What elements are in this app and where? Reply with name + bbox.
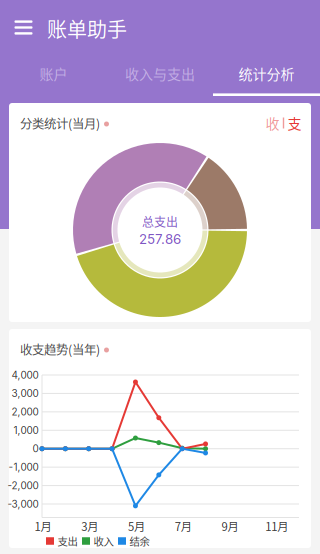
staticText: 账单助手	[47, 14, 127, 43]
staticText: 7月	[175, 518, 192, 534]
staticText: 1,000	[13, 424, 38, 436]
staticText: 11月	[265, 518, 288, 534]
button[interactable]: Menu	[0, 0, 47, 55]
button[interactable]: 收	[266, 113, 279, 133]
staticText: -3,000	[7, 498, 38, 510]
staticText: 统计分析	[239, 63, 295, 84]
staticText: 结余	[129, 533, 149, 549]
staticText: 3月	[81, 518, 98, 534]
staticText: 分类统计(当月)	[20, 114, 100, 132]
staticText: 收入	[93, 533, 113, 549]
staticText: -2,000	[7, 479, 38, 492]
staticText: 3,000	[11, 387, 38, 399]
staticText: 账户	[39, 63, 67, 84]
staticText: 收入与支出	[125, 63, 195, 84]
staticText: 收	[265, 113, 279, 133]
staticText: 2,000	[11, 406, 38, 418]
button[interactable]: 账户	[0, 54, 107, 94]
button[interactable]: 统计分析	[213, 54, 320, 94]
staticText: 支出	[57, 533, 77, 549]
staticText: 总支出	[142, 213, 178, 230]
staticText: 1月	[34, 518, 51, 534]
button[interactable]: 支	[288, 113, 301, 133]
staticText: 支	[287, 113, 301, 133]
staticText: 0	[32, 443, 38, 455]
staticText: 9月	[221, 518, 238, 534]
staticText: -1,000	[8, 461, 38, 473]
staticText: 收支趋势(当年)	[20, 340, 100, 358]
staticText: 257.86	[139, 231, 181, 247]
staticText: 4,000	[11, 369, 38, 381]
staticText: 5月	[128, 518, 145, 534]
button[interactable]: 收入与支出	[107, 54, 213, 94]
